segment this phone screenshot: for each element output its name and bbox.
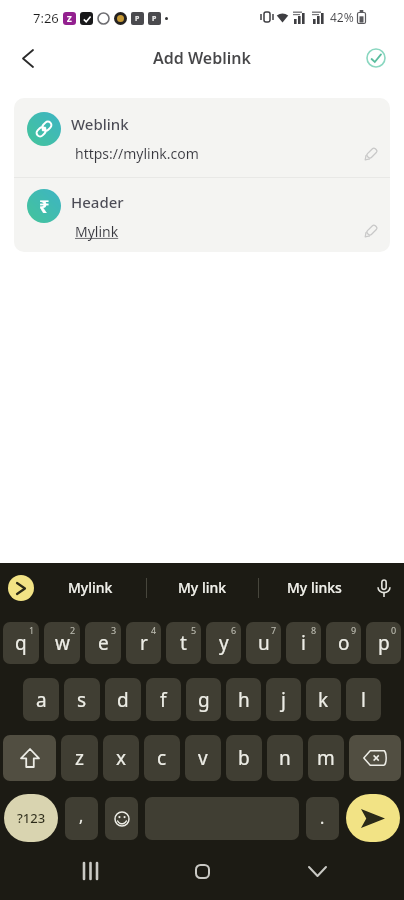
button[interactable]: g bbox=[186, 678, 221, 721]
staticText: Header bbox=[71, 192, 124, 212]
staticText: s bbox=[77, 687, 87, 713]
staticText: Z bbox=[67, 13, 72, 24]
staticText: o bbox=[338, 630, 350, 656]
button[interactable]: p bbox=[366, 622, 401, 664]
button[interactable]: x bbox=[103, 735, 139, 781]
button[interactable]: d bbox=[105, 678, 141, 721]
staticText: y bbox=[219, 630, 229, 656]
button[interactable]: f bbox=[146, 678, 181, 721]
button[interactable]: w bbox=[44, 622, 80, 664]
staticText: a bbox=[36, 687, 47, 713]
staticText: Mylink bbox=[75, 222, 119, 241]
staticText: 5 bbox=[191, 624, 197, 636]
staticText: Mylink bbox=[68, 578, 113, 597]
button[interactable]: i bbox=[286, 622, 321, 664]
staticText: . bbox=[320, 807, 325, 829]
button[interactable] bbox=[14, 177, 390, 252]
staticText: p bbox=[378, 630, 390, 656]
staticText: 0 bbox=[391, 624, 397, 636]
staticText: 4 bbox=[151, 624, 157, 636]
button[interactable]: b bbox=[226, 735, 262, 781]
staticText: t bbox=[180, 630, 187, 656]
staticText: My links bbox=[287, 578, 342, 597]
staticText: l bbox=[361, 687, 366, 713]
button[interactable]: Mylink bbox=[34, 563, 146, 612]
staticText: n bbox=[279, 745, 291, 771]
staticText: b bbox=[238, 745, 250, 771]
staticText: w bbox=[55, 630, 70, 656]
staticText: q bbox=[15, 630, 27, 656]
staticText: ₹ bbox=[39, 194, 50, 219]
staticText: 3 bbox=[111, 624, 117, 636]
staticText: u bbox=[258, 630, 270, 656]
staticText: My link bbox=[178, 578, 227, 597]
staticText: 9 bbox=[351, 624, 357, 636]
button[interactable] bbox=[105, 797, 138, 840]
staticText: d bbox=[117, 687, 129, 713]
staticText: j bbox=[281, 687, 286, 713]
button[interactable] bbox=[8, 575, 34, 601]
button[interactable]: k bbox=[306, 678, 341, 721]
button[interactable]: c bbox=[144, 735, 180, 781]
staticText: f bbox=[160, 687, 167, 713]
staticText: c bbox=[157, 745, 167, 771]
staticText: e bbox=[98, 630, 109, 656]
button[interactable]: h bbox=[226, 678, 261, 721]
button[interactable] bbox=[14, 98, 390, 177]
button[interactable]: s bbox=[64, 678, 100, 721]
button[interactable]: n bbox=[267, 735, 303, 781]
button[interactable]: r bbox=[126, 622, 161, 664]
button[interactable]: My link bbox=[147, 563, 258, 612]
staticText: h bbox=[238, 687, 250, 713]
staticText: Weblink bbox=[71, 114, 129, 134]
button[interactable]: y bbox=[206, 622, 241, 664]
staticText: https://mylink.com bbox=[75, 144, 199, 163]
button[interactable]: e bbox=[85, 622, 121, 664]
button[interactable]: t bbox=[166, 622, 201, 664]
staticText: z bbox=[75, 745, 84, 771]
staticText: 2 bbox=[70, 624, 76, 636]
button[interactable]: a bbox=[23, 678, 59, 721]
button[interactable] bbox=[370, 574, 398, 602]
button[interactable] bbox=[76, 856, 106, 886]
staticText: x bbox=[116, 745, 127, 771]
button[interactable]: j bbox=[266, 678, 301, 721]
button[interactable]: v bbox=[185, 735, 221, 781]
staticText: r bbox=[140, 630, 148, 656]
staticText: P bbox=[135, 14, 140, 24]
button[interactable] bbox=[349, 735, 401, 781]
button[interactable]: z bbox=[61, 735, 98, 781]
staticText: m bbox=[317, 745, 335, 771]
button[interactable]: u bbox=[246, 622, 281, 664]
button[interactable] bbox=[346, 794, 400, 842]
staticText: g bbox=[198, 687, 210, 713]
button[interactable]: My links bbox=[259, 563, 370, 612]
staticText: k bbox=[318, 687, 329, 713]
button[interactable]: m bbox=[308, 735, 344, 781]
button[interactable] bbox=[187, 856, 217, 886]
button[interactable]: . bbox=[306, 797, 339, 840]
staticText: 1 bbox=[29, 624, 35, 636]
staticText: P bbox=[152, 14, 157, 24]
button[interactable] bbox=[302, 856, 332, 886]
staticText: Add Weblink bbox=[153, 47, 251, 69]
staticText: v bbox=[198, 745, 208, 771]
button[interactable]: q bbox=[3, 622, 39, 664]
button[interactable]: , bbox=[65, 797, 98, 840]
staticText: i bbox=[301, 630, 306, 656]
staticText: , bbox=[79, 805, 84, 827]
staticText: 6 bbox=[231, 624, 237, 636]
staticText: 8 bbox=[311, 624, 317, 636]
button[interactable] bbox=[12, 42, 44, 74]
button[interactable] bbox=[363, 45, 389, 71]
staticText: 7:26 bbox=[33, 9, 59, 27]
staticText: 42% bbox=[330, 9, 354, 25]
button[interactable]: l bbox=[346, 678, 381, 721]
button[interactable] bbox=[3, 735, 56, 781]
button[interactable]: o bbox=[326, 622, 361, 664]
staticText: 7 bbox=[271, 624, 277, 636]
staticText: ?123 bbox=[17, 809, 46, 827]
button[interactable]: ?123 bbox=[4, 794, 58, 842]
